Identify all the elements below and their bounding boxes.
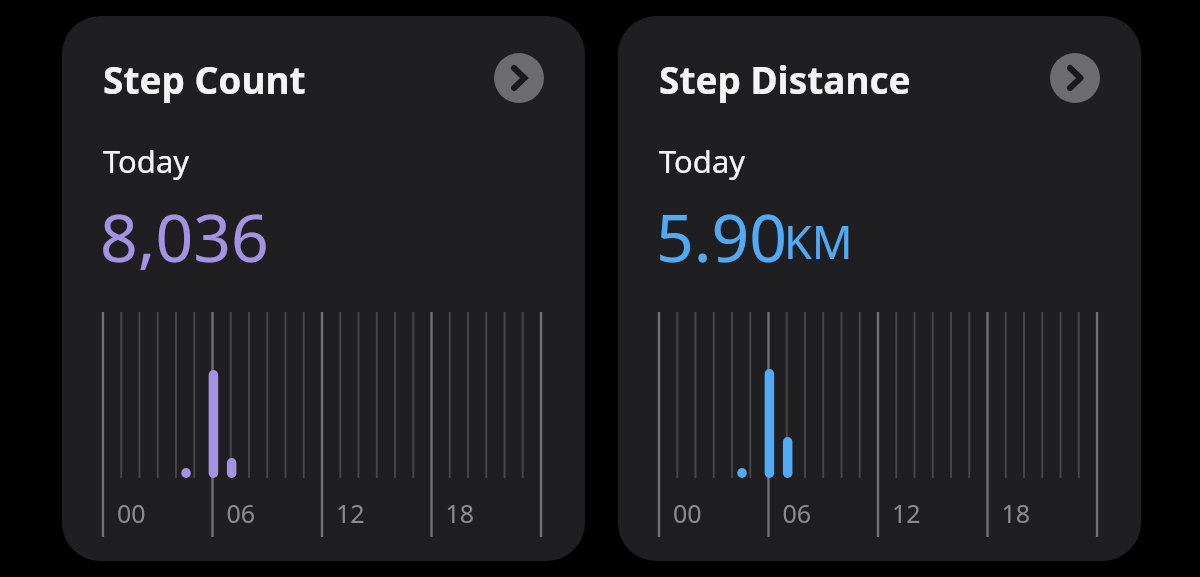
button[interactable]: Step Distance card: [618, 16, 1141, 561]
button[interactable]: Step Count card: [62, 16, 585, 561]
button[interactable]: Open Step Distance details: [1050, 53, 1100, 103]
button[interactable]: Open Step Count details: [494, 53, 544, 103]
